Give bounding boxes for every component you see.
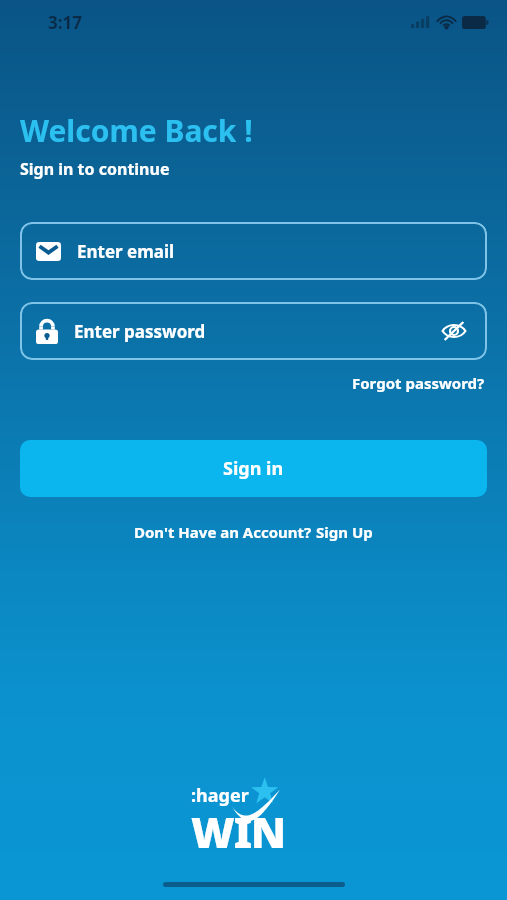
staticText: 3:17: [48, 11, 82, 34]
button[interactable]: Forgot password?: [350, 371, 487, 395]
button[interactable]: Enter email: [20, 222, 487, 280]
button[interactable]: Sign Up: [316, 522, 373, 542]
button[interactable]: Enter password: [20, 302, 487, 360]
button[interactable]: Sign in: [20, 440, 487, 497]
staticText: Don't Have an Account?: [134, 522, 316, 542]
button[interactable]: Show password: [437, 314, 471, 348]
staticText: :hager: [191, 783, 249, 808]
staticText: Sign in: [223, 456, 284, 481]
staticText: Forgot password?: [352, 373, 485, 393]
staticText: Sign in to continue: [20, 158, 170, 180]
staticText: Enter password: [74, 320, 206, 343]
staticText: Enter email: [77, 240, 175, 263]
staticText: Sign Up: [316, 522, 373, 542]
staticText: WIN: [191, 803, 286, 860]
staticText: Welcome Back !: [20, 110, 253, 151]
